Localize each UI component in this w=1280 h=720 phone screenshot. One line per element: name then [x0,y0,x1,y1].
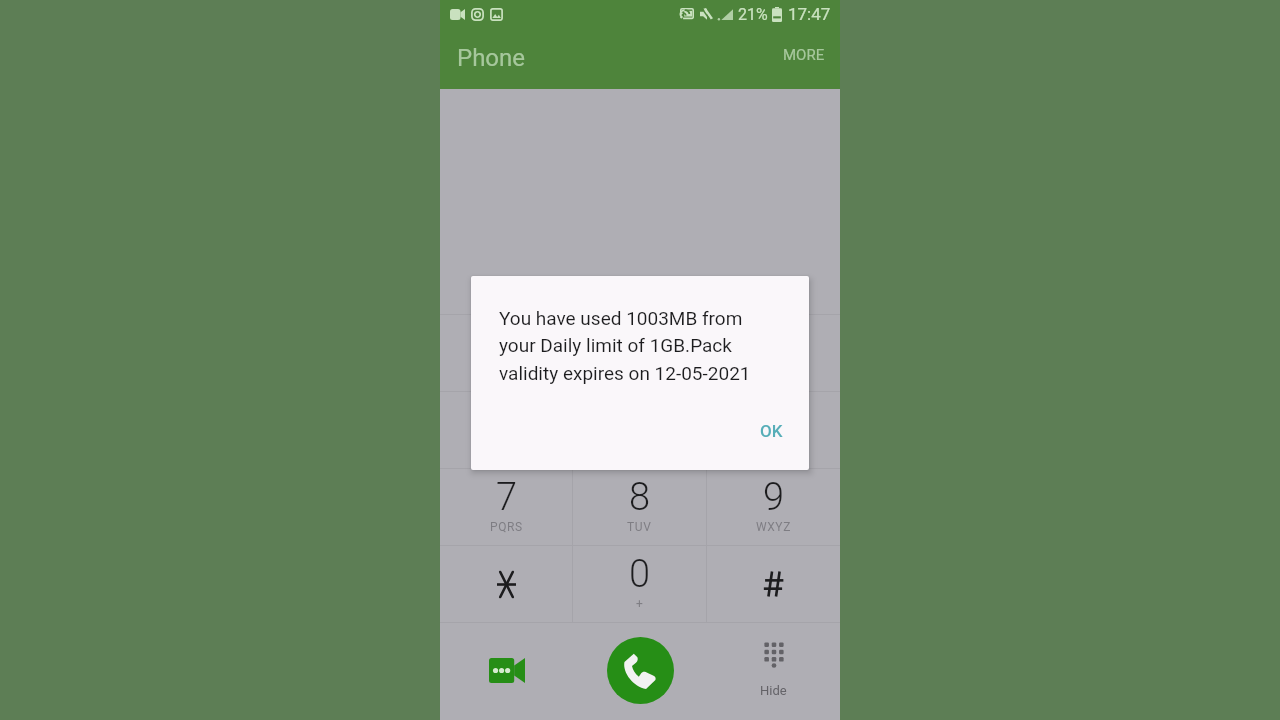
button[interactable]: MORE [777,40,831,70]
button[interactable]: 8 [573,468,706,545]
button[interactable]: Hide keypad [707,622,840,720]
button[interactable]: 9 [707,468,840,545]
button[interactable]: Star key [440,545,572,622]
button[interactable]: 4 [440,391,572,468]
staticText: 0 [629,552,651,597]
staticText: OK [760,421,783,441]
staticText: You have used 1003MB from your Daily lim… [499,307,751,385]
staticText: 2 [629,321,651,366]
staticText: WXYZ [756,520,791,534]
staticText: MORE [783,46,825,64]
staticText: ABC [627,366,652,380]
staticText: + [636,597,644,611]
button[interactable]: 7 [440,468,572,545]
button[interactable]: OK [750,413,793,449]
button[interactable]: 3 [707,314,840,391]
staticText: PQRS [490,520,523,534]
staticText: 21% [738,5,768,24]
staticText: Phone [457,44,526,72]
button[interactable]: 1 [440,314,572,391]
staticText: 8 [629,475,651,520]
button[interactable]: 0 [573,545,706,622]
staticText: 9 [763,475,785,520]
staticText: 6 [763,398,785,443]
staticText: 1 [495,321,517,366]
staticText: 7 [496,475,518,520]
staticText: 17:47 [788,4,831,24]
button[interactable]: Pound key [707,545,840,622]
staticText: TUV [627,520,652,534]
staticText: Hide [760,683,787,698]
button[interactable]: 2 [573,314,706,391]
button[interactable]: Video call [440,622,574,720]
button[interactable]: 6 [707,391,840,468]
button[interactable]: Call [574,622,707,720]
